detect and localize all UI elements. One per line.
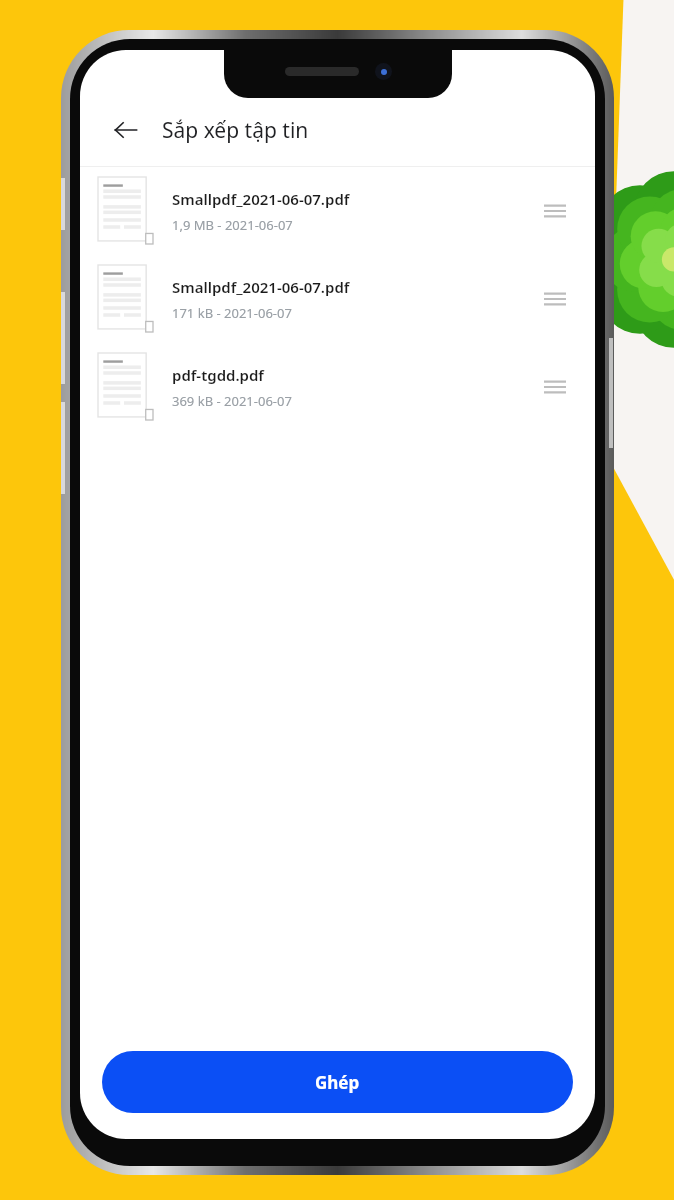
staticText: Ghép	[315, 1071, 360, 1094]
staticText: Sắp xếp tập tin	[162, 116, 309, 145]
button[interactable]: Reorder	[535, 279, 575, 319]
staticText: 1,9 MB - 2021-06-07	[172, 216, 293, 234]
button[interactable]: Reorder	[535, 191, 575, 231]
staticText: Smallpdf_2021-06-07.pdf	[172, 189, 350, 209]
button[interactable]: Back	[104, 108, 148, 152]
button[interactable]: pdf-tgdd.pdf	[80, 343, 595, 431]
staticText: 171 kB - 2021-06-07	[172, 304, 292, 322]
button[interactable]: Ghép	[102, 1051, 573, 1113]
button[interactable]: Smallpdf_2021-06-07.pdf	[80, 167, 595, 255]
button[interactable]: Smallpdf_2021-06-07.pdf	[80, 255, 595, 343]
staticText: Smallpdf_2021-06-07.pdf	[172, 277, 350, 297]
staticText: 369 kB - 2021-06-07	[172, 392, 292, 410]
button[interactable]: Reorder	[535, 367, 575, 407]
staticText: pdf-tgdd.pdf	[172, 365, 264, 385]
